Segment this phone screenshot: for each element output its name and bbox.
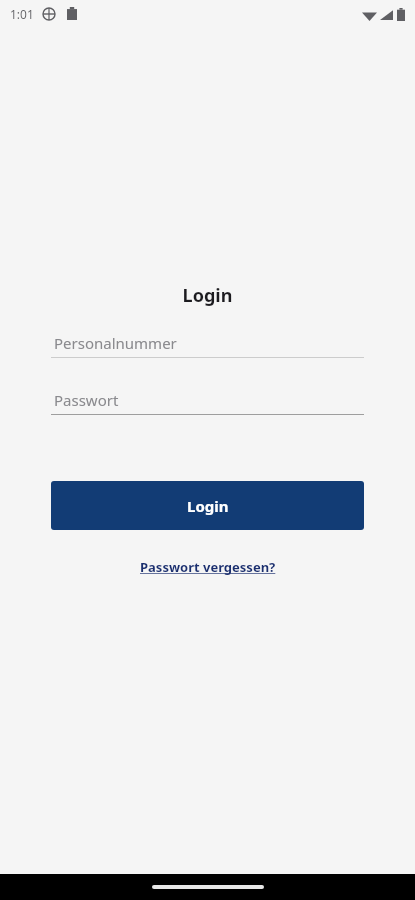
button[interactable]: Passwort — [51, 387, 364, 415]
other: Notification — [67, 7, 77, 20]
staticText: 1:01 — [10, 6, 34, 22]
staticText: Login — [51, 283, 364, 308]
other: Mobile signal — [380, 9, 393, 21]
button[interactable]: Login — [51, 481, 364, 530]
other: Home — [152, 885, 264, 889]
staticText: Login — [187, 496, 229, 516]
other: Wi-Fi — [362, 9, 377, 21]
button[interactable]: Personalnummer — [51, 330, 364, 358]
staticText: Passwort — [54, 390, 119, 410]
other: Battery — [397, 8, 405, 21]
staticText: Passwort vergessen? — [140, 558, 276, 576]
staticText: Personalnummer — [54, 333, 177, 353]
other: Status icon — [43, 8, 55, 20]
button[interactable]: Passwort vergessen? — [136, 556, 280, 578]
